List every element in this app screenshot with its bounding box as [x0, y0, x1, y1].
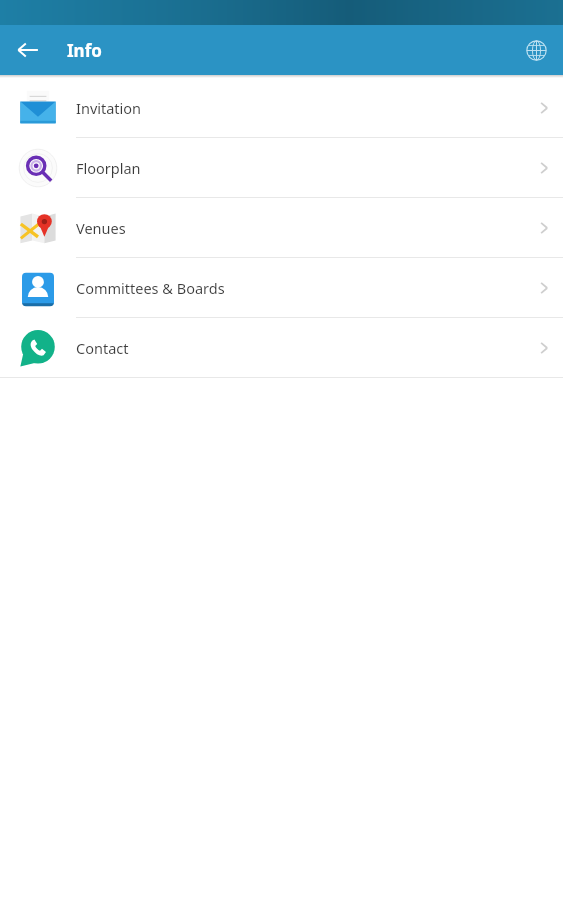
button[interactable]: Invitation: [0, 78, 563, 137]
button[interactable]: Venues: [0, 198, 563, 257]
button[interactable]: Contact: [0, 318, 563, 377]
staticText: Contact: [76, 338, 525, 358]
button[interactable]: Committees & Boards: [0, 258, 563, 317]
button[interactable]: Language: [514, 28, 558, 72]
staticText: Invitation: [76, 98, 525, 118]
button[interactable]: Floorplan: [0, 138, 563, 197]
staticText: Committees & Boards: [76, 278, 525, 298]
staticText: Floorplan: [76, 158, 525, 178]
button[interactable]: Back: [8, 30, 48, 70]
staticText: Venues: [76, 218, 525, 238]
staticText: Info: [67, 39, 102, 62]
